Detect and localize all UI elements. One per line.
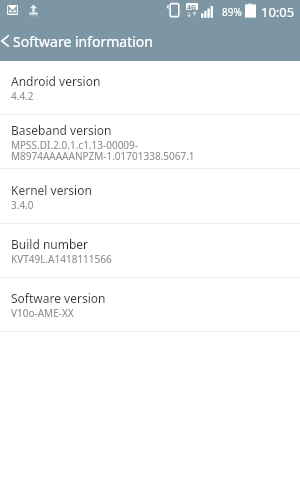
- staticText: Android version: [11, 73, 101, 89]
- button[interactable]: Back: [0, 22, 300, 61]
- staticText: V10o-AME-XX: [11, 308, 74, 319]
- staticText: MPSS.DI.2.0.1.c1.13-00009- M8974AAAAANPZ…: [11, 140, 195, 162]
- staticText: 3.4.0: [11, 200, 34, 211]
- staticText: Kernel version: [11, 182, 92, 198]
- staticText: KVT49L.A1418111566: [11, 254, 112, 265]
- button[interactable]: Baseband version: [0, 115, 300, 168]
- staticText: Build number: [11, 236, 89, 252]
- button[interactable]: Software version: [0, 278, 300, 331]
- staticText: Baseband version: [11, 122, 112, 138]
- staticText: 10:05: [261, 3, 295, 21]
- staticText: Software version: [11, 290, 106, 306]
- staticText: Software information: [13, 32, 153, 51]
- button[interactable]: Android version: [0, 61, 300, 114]
- staticText: 4.4.2: [11, 91, 34, 102]
- staticText: 4G: [187, 3, 197, 10]
- button[interactable]: Kernel version: [0, 169, 300, 223]
- other: Back: [0, 22, 13, 61]
- staticText: 89%: [222, 5, 242, 19]
- button[interactable]: Build number: [0, 224, 300, 277]
